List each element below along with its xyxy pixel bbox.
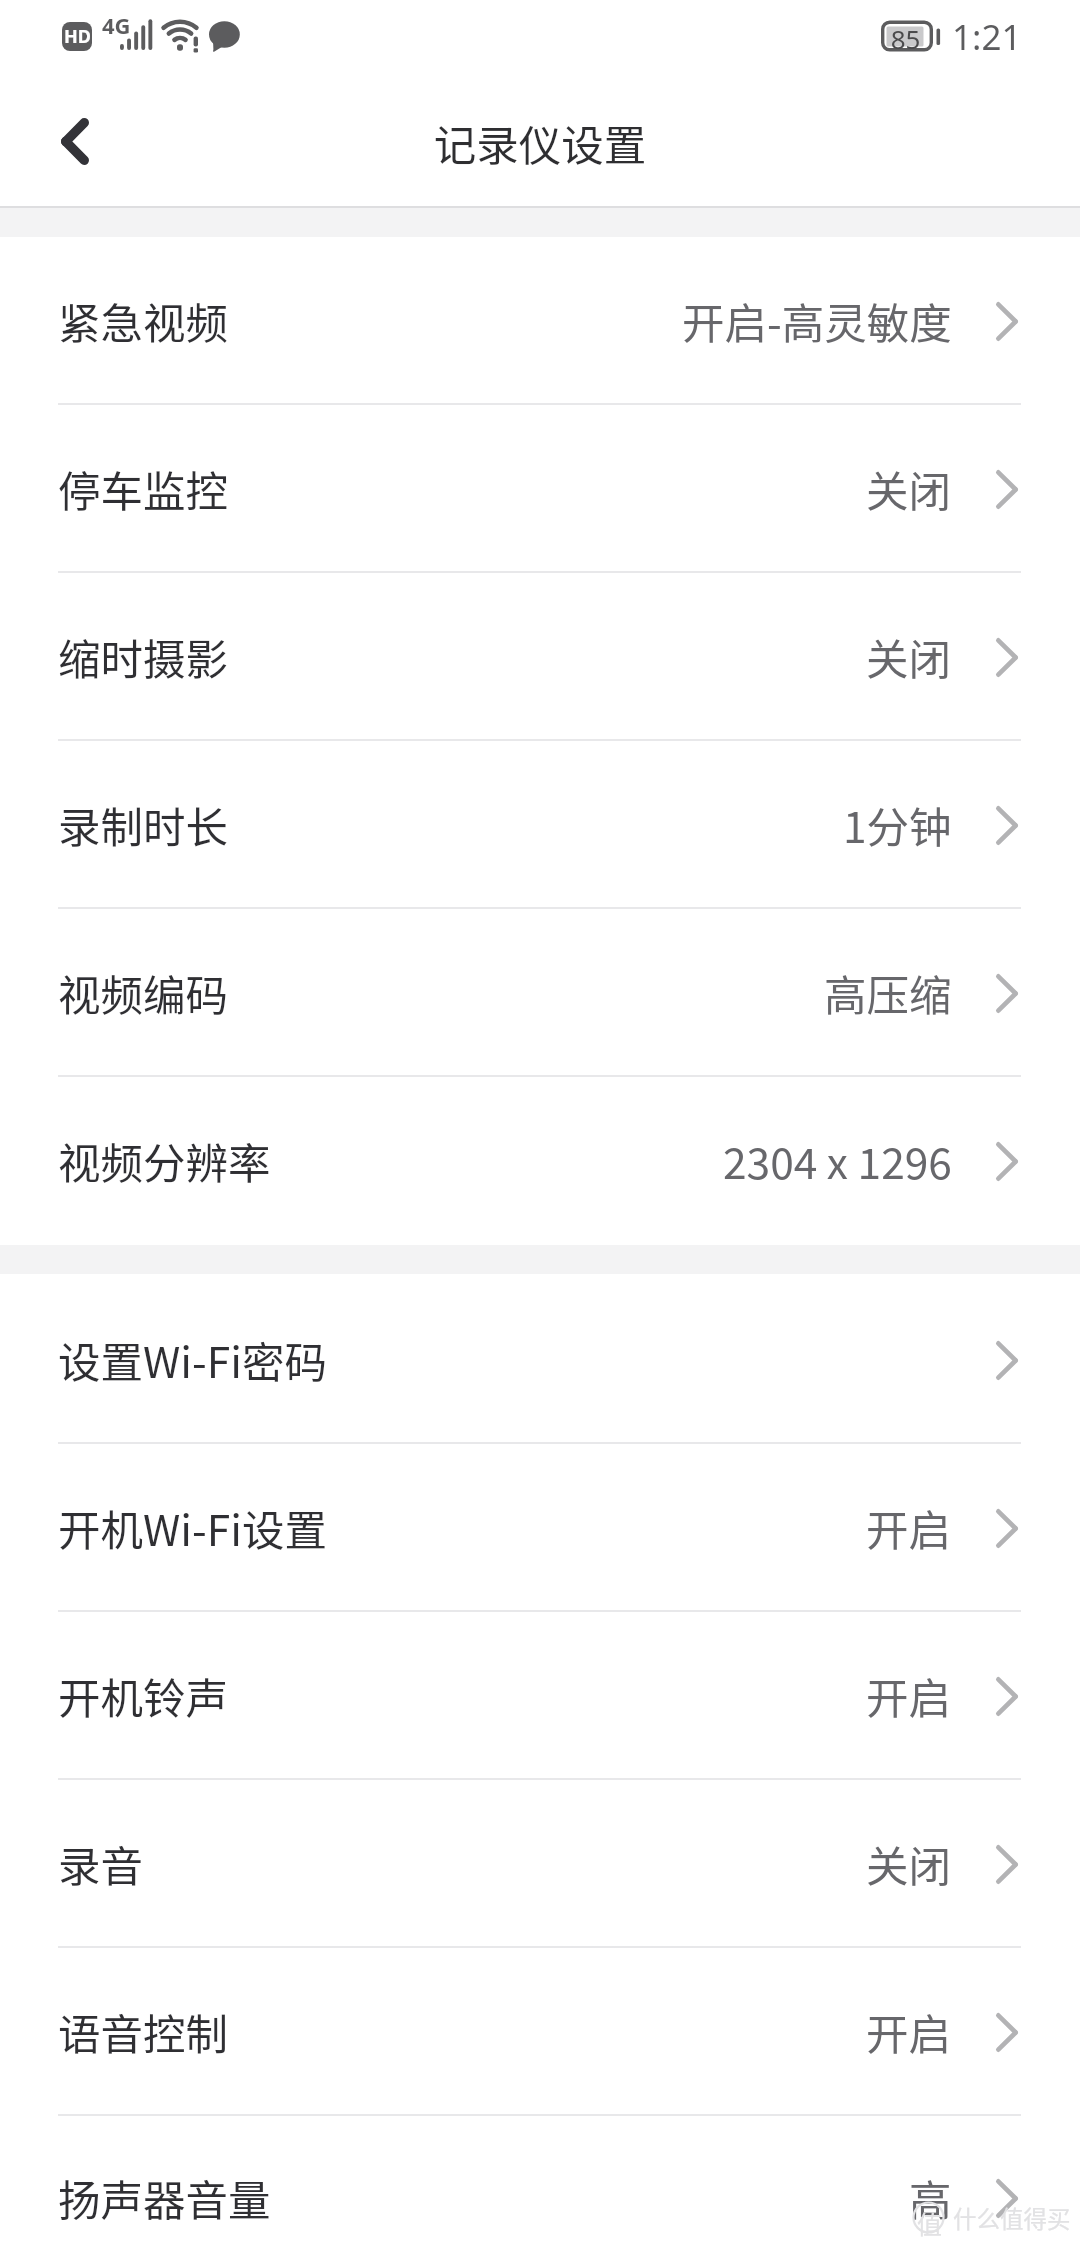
staticText: 扬声器音量 [58,2167,271,2229]
staticText: 开启 [866,1497,952,1559]
staticText: 录制时长 [58,794,229,856]
staticText: 开机Wi-Fi设置 [58,1497,327,1559]
button[interactable]: Back [0,78,150,206]
staticText: 紧急视频 [58,290,229,352]
staticText: 视频分辨率 [58,1130,271,1192]
staticText: 关闭 [866,626,952,688]
button[interactable]: 停车监控 [0,405,1080,573]
staticText: 1:21 [952,13,1022,61]
staticText: 1分钟 [843,794,952,856]
button[interactable]: 录制时长 [0,741,1080,909]
button[interactable]: 语音控制 [0,1948,1080,2116]
button[interactable]: 缩时摄影 [0,573,1080,741]
staticText: 记录仪设置 [0,112,1080,174]
staticText: 4G [102,10,131,40]
staticText: 视频编码 [58,962,229,1024]
staticText: 高 [909,2167,952,2229]
staticText: 开机铃声 [58,1665,229,1727]
staticText: 值 [917,2205,943,2241]
staticText: 录音 [58,1833,144,1895]
staticText: 开启 [866,2001,952,2063]
button[interactable]: 录音 [0,1780,1080,1948]
button[interactable]: 开机Wi-Fi设置 [0,1444,1080,1612]
button[interactable]: 视频分辨率 [0,1077,1080,1245]
staticText: 什么值得买 [953,2201,1071,2235]
staticText: 高压缩 [824,962,952,1024]
staticText: 语音控制 [58,2001,229,2063]
button[interactable]: 紧急视频 [0,237,1080,405]
staticText: 开启-高灵敏度 [682,290,952,352]
button[interactable]: 设置Wi-Fi密码 [0,1276,1080,1444]
staticText: 开启 [866,1665,952,1727]
staticText: 关闭 [866,458,952,520]
button[interactable]: 开机铃声 [0,1612,1080,1780]
button[interactable]: 视频编码 [0,909,1080,1077]
staticText: 2304 x 1296 [723,1130,952,1192]
staticText: 设置Wi-Fi密码 [58,1329,327,1391]
staticText: 停车监控 [58,458,229,520]
staticText: 85 [886,21,925,56]
button[interactable]: 扬声器音量 [0,2116,1080,2244]
staticText: 关闭 [866,1833,952,1895]
staticText: HD [64,24,91,49]
staticText: 缩时摄影 [58,626,229,688]
